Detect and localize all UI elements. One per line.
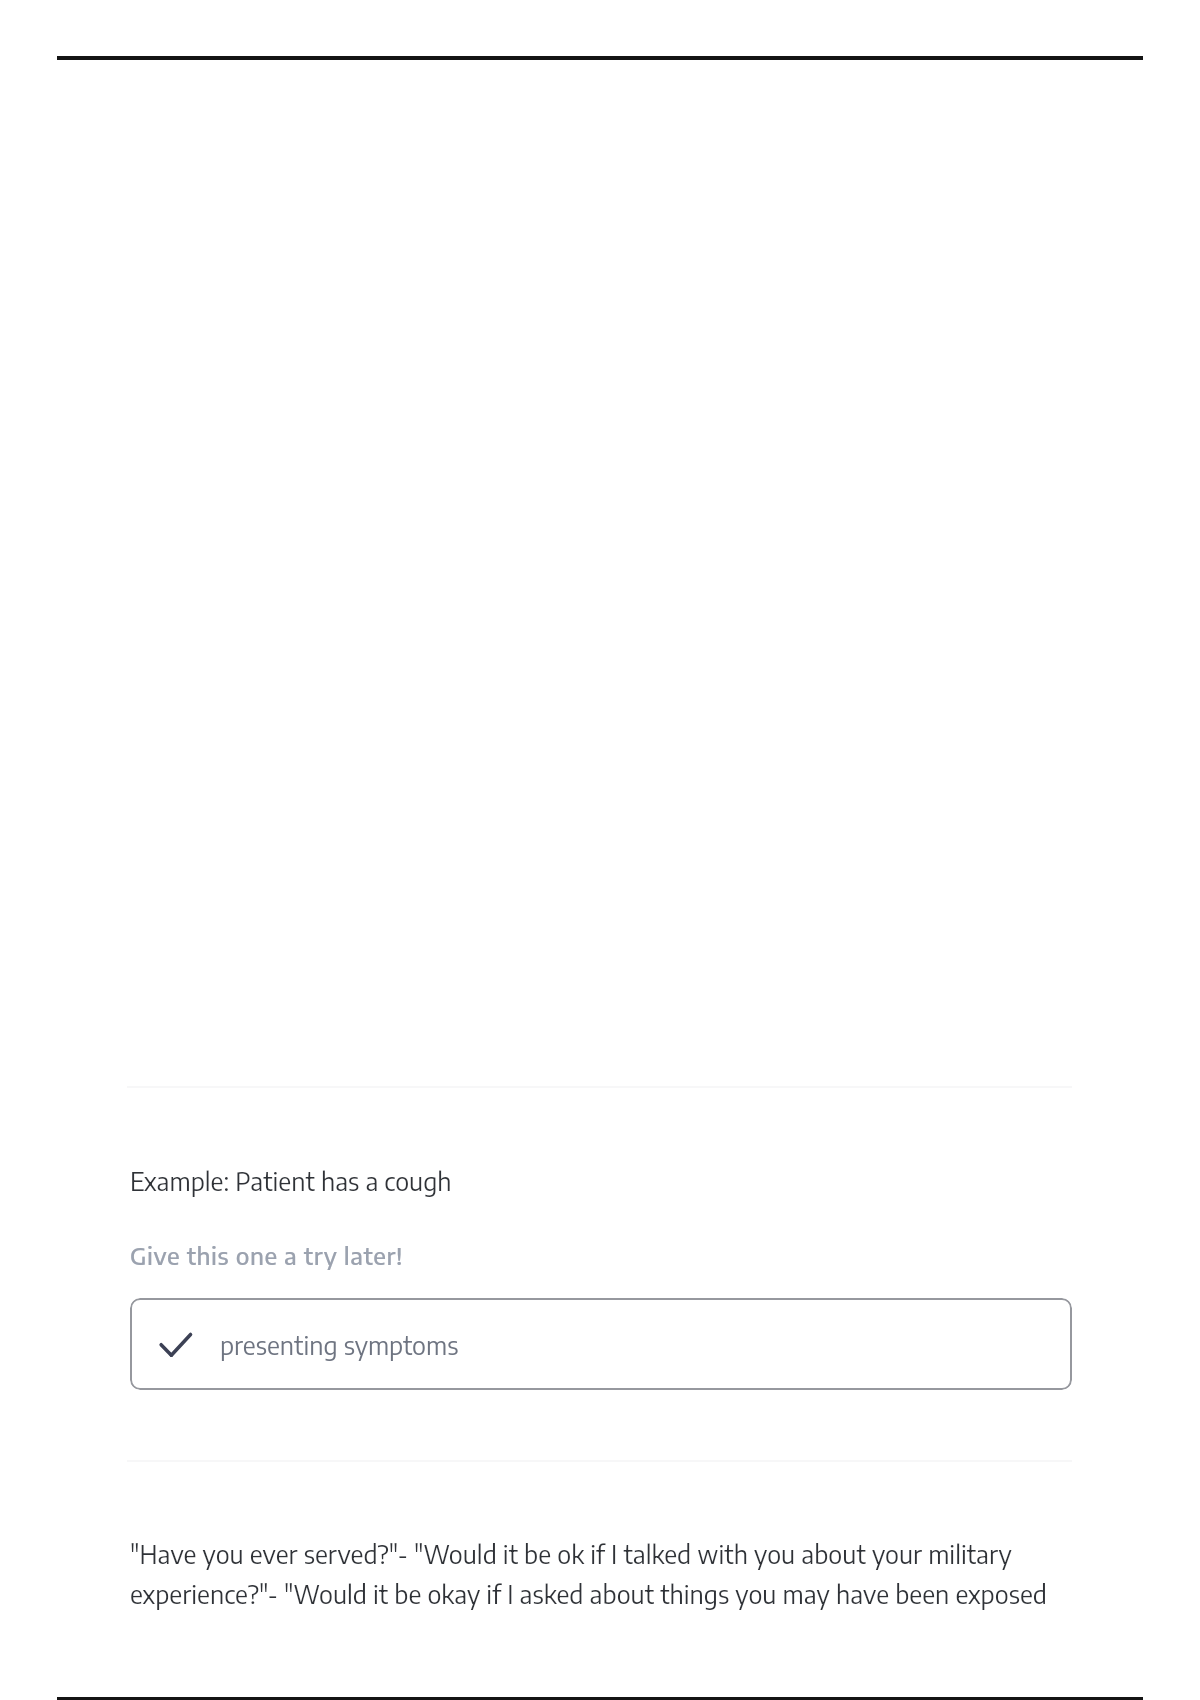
staticText: Give this one a try later! <box>130 1240 404 1270</box>
other: Selected <box>160 1328 192 1360</box>
staticText: "Have you ever served?"- "Would it be ok… <box>130 1538 1075 1609</box>
button[interactable]: Selected <box>130 1298 1072 1390</box>
staticText: Example: Patient has a cough <box>130 1165 452 1196</box>
staticText: presenting symptoms <box>220 1329 459 1360</box>
